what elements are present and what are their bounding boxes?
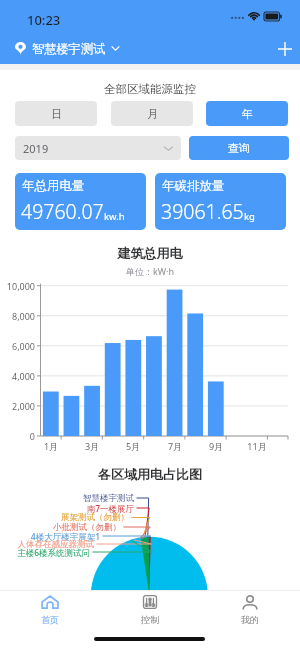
staticText: 4楼大厅楼宇展架1 (0, 531, 100, 543)
staticText: 日 (51, 107, 62, 121)
staticText: 首页 (41, 614, 59, 625)
staticText: kw.h (104, 210, 125, 223)
staticText: 49760.07 (21, 198, 104, 225)
staticText: 建筑总用电 (0, 245, 300, 261)
staticText: 10:23 (27, 11, 61, 29)
button[interactable]: 日 (15, 101, 97, 126)
staticText: 11月 (237, 440, 277, 452)
button[interactable]: 2019 (15, 136, 181, 160)
staticText: 智慧楼宇测试 (32, 41, 106, 56)
staticText: 3月 (72, 440, 112, 452)
button[interactable]: 控制 (100, 591, 200, 631)
staticText: 全部区域能源监控 (0, 82, 300, 96)
staticText: kg (244, 210, 255, 223)
staticText: 年碳排放量 (162, 178, 225, 194)
button[interactable]: Add (270, 34, 300, 64)
staticText: 展架测试（勿删） (0, 512, 129, 523)
button[interactable]: 年总用电量 (15, 173, 146, 230)
staticText: 小批测试（勿删） (0, 522, 121, 533)
staticText: 主楼6楼系统测试问 (0, 547, 90, 559)
staticText: 1月 (31, 440, 71, 452)
staticText: 2019 (23, 141, 49, 156)
staticText: 4,000 (0, 370, 35, 382)
button[interactable]: 年碳排放量 (155, 173, 286, 230)
button[interactable]: 智慧楼宇测试 (0, 41, 125, 56)
staticText: 5月 (113, 440, 153, 452)
button[interactable]: 年 (206, 101, 288, 126)
staticText: 10,000 (0, 280, 35, 292)
staticText: 月 (147, 107, 158, 121)
staticText: 6,000 (0, 340, 35, 352)
staticText: 智慧楼宇测试 (4, 493, 134, 504)
button[interactable]: 首页 (0, 591, 100, 631)
staticText: 控制 (141, 614, 159, 625)
staticText: 8,000 (0, 310, 35, 322)
staticText: 人体存在感应器测试 (0, 539, 94, 550)
staticText: 9月 (196, 440, 236, 452)
staticText: 南7一楼展厅 (4, 503, 134, 515)
button[interactable]: 月 (111, 101, 193, 126)
staticText: 0 (0, 430, 35, 442)
staticText: 单位：kW·h (0, 265, 300, 277)
staticText: 7月 (155, 440, 195, 452)
staticText: 39061.65 (161, 198, 244, 225)
staticText: 年总用电量 (22, 178, 85, 194)
button[interactable]: 我的 (200, 591, 300, 631)
staticText: 年 (242, 107, 253, 121)
staticText: 2,000 (0, 400, 35, 412)
staticText: 我的 (241, 614, 259, 625)
staticText: 各区域用电占比图 (0, 466, 300, 482)
staticText: 查询 (228, 141, 250, 155)
button[interactable]: 查询 (189, 136, 289, 160)
